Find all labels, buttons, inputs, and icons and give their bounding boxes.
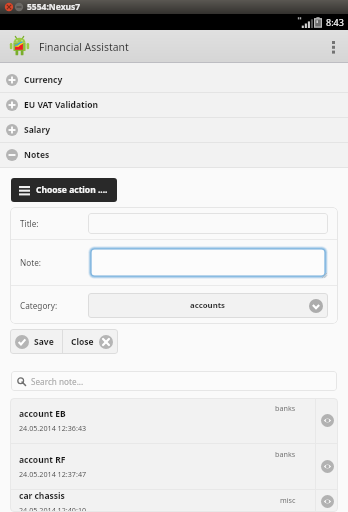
- staticText: Search note...: [31, 376, 84, 387]
- staticText: banks: [275, 449, 296, 459]
- button[interactable]: account RF: [10, 444, 338, 489]
- button[interactable]: Salary: [0, 118, 348, 143]
- staticText: 8:43: [326, 16, 344, 28]
- staticText: Salary: [24, 124, 51, 136]
- staticText: accounts: [190, 300, 226, 311]
- button[interactable]: Notes: [0, 143, 348, 168]
- button[interactable]: EU VAT Validation: [0, 93, 348, 118]
- staticText: 24.05.2014 12:40:10: [19, 505, 87, 512]
- button[interactable]: account EB: [10, 398, 338, 443]
- staticText: Financial Assistant: [39, 40, 129, 54]
- staticText: account RF: [19, 454, 66, 466]
- staticText: account EB: [19, 408, 66, 420]
- button[interactable]: Currency: [0, 68, 348, 93]
- button[interactable]: View note: [316, 444, 338, 489]
- staticText: car chassis: [19, 490, 65, 502]
- button[interactable]: View note: [316, 398, 338, 443]
- button[interactable]: Save: [10, 329, 62, 354]
- staticText: Note:: [20, 257, 41, 268]
- button[interactable]: Choose action ....: [11, 178, 117, 202]
- staticText: Save: [34, 336, 54, 348]
- staticText: banks: [275, 403, 296, 413]
- button[interactable]: [88, 246, 328, 279]
- staticText: Choose action ....: [36, 184, 108, 196]
- button[interactable]: More options: [318, 32, 348, 62]
- button[interactable]: Close: [63, 329, 118, 354]
- staticText: Notes: [24, 149, 50, 161]
- staticText: Title:: [20, 218, 39, 229]
- staticText: 24.05.2014 12:37:47: [19, 469, 87, 479]
- staticText: misc: [280, 495, 296, 505]
- staticText: 5554:Nexus7: [27, 1, 81, 13]
- staticText: 24.05.2014 12:36:43: [19, 423, 87, 433]
- button[interactable]: [88, 213, 328, 234]
- staticText: Category:: [20, 300, 58, 311]
- button[interactable]: Financial Assistant: [0, 30, 348, 63]
- button[interactable]: accounts: [88, 293, 328, 318]
- staticText: EU VAT Validation: [24, 99, 99, 111]
- staticText: Close: [71, 336, 94, 348]
- button[interactable]: View note: [316, 490, 338, 512]
- button[interactable]: Search note...: [11, 371, 337, 391]
- button[interactable]: car chassis: [10, 490, 338, 512]
- staticText: Currency: [24, 74, 63, 86]
